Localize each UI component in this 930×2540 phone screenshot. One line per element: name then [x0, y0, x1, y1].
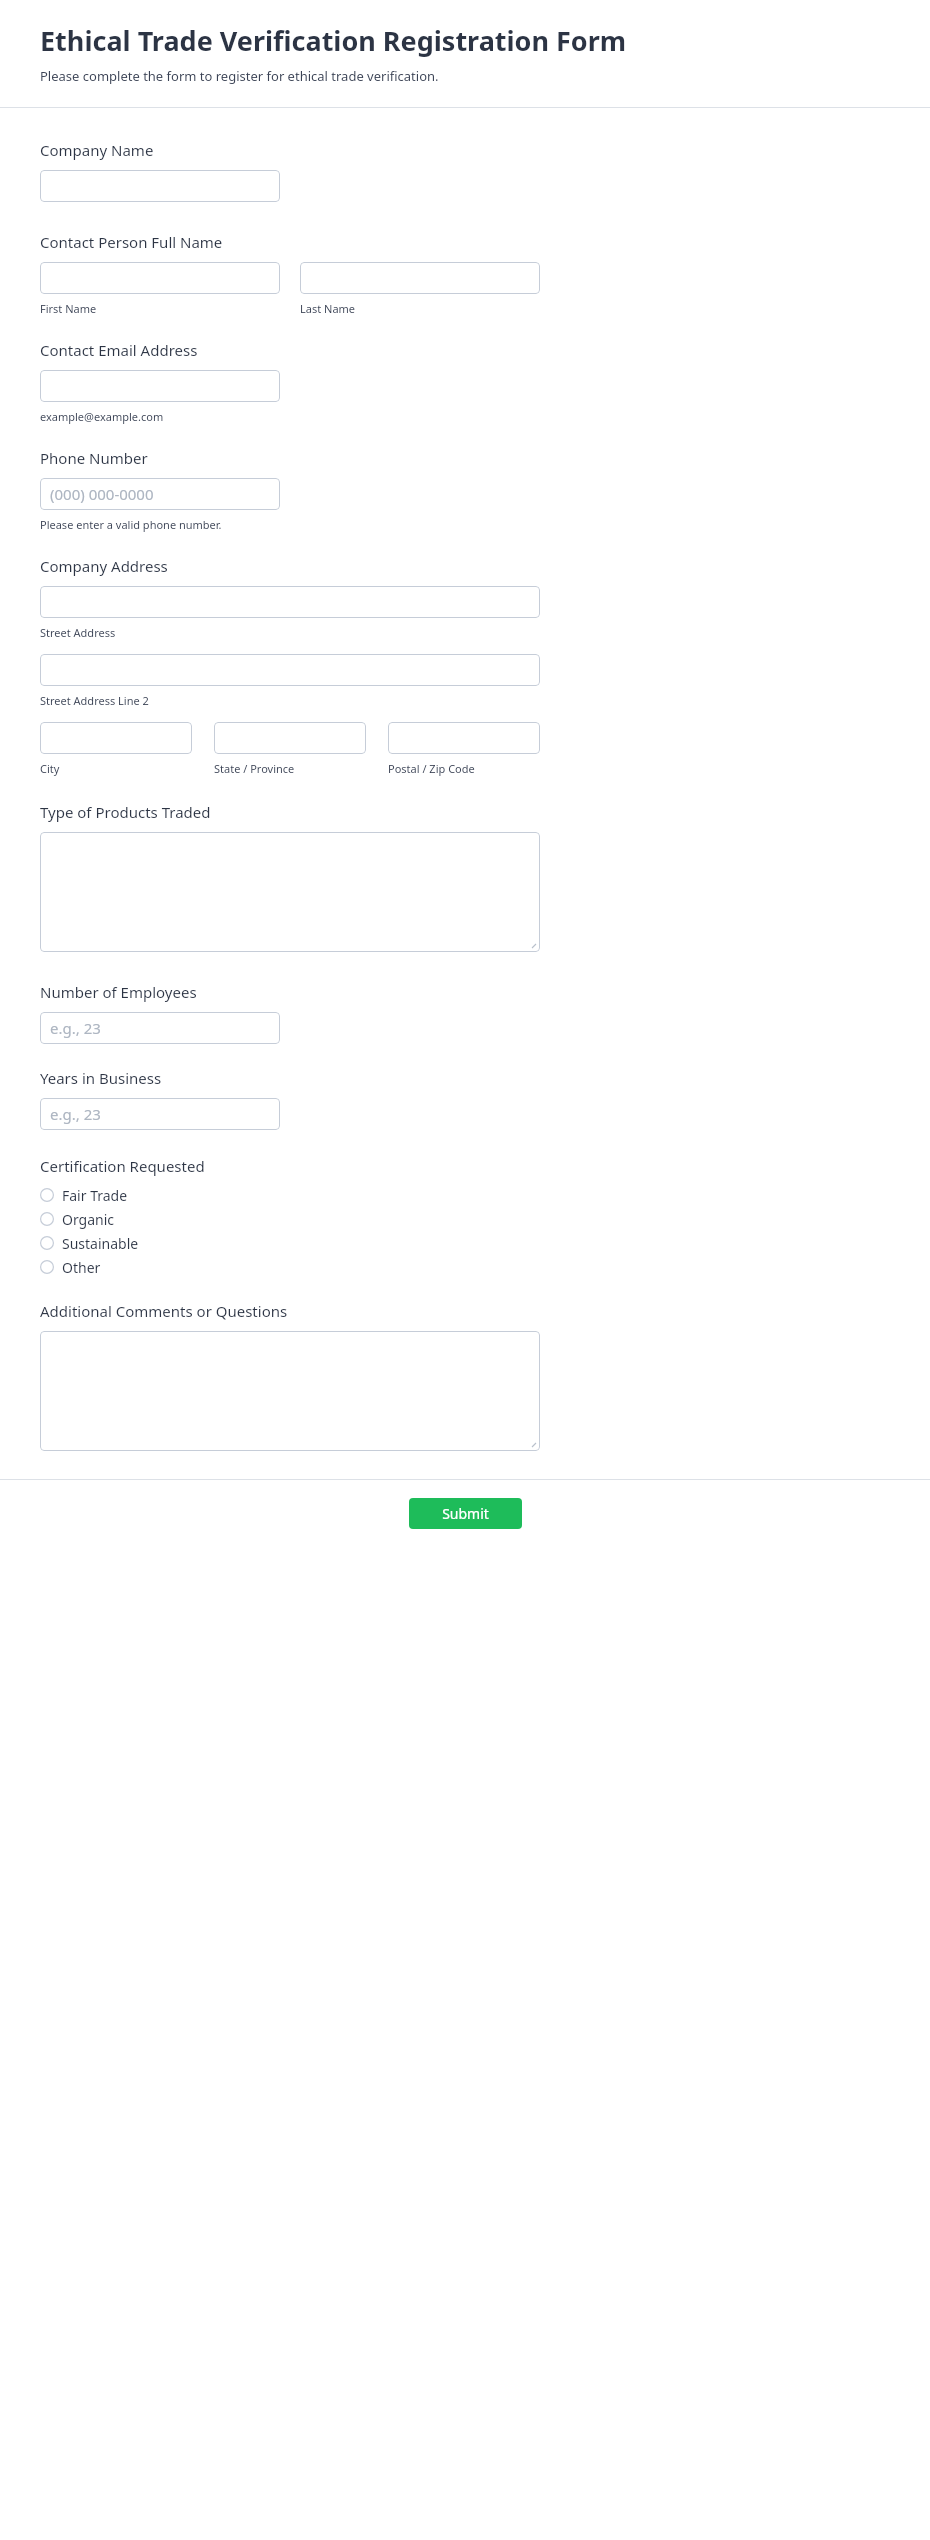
- staticText: State / Province: [214, 761, 295, 776]
- button[interactable]: e.g., 23: [40, 1012, 280, 1044]
- button[interactable]: [40, 586, 540, 618]
- button[interactable]: [40, 262, 280, 294]
- staticText: Sustainable: [62, 1234, 139, 1253]
- button[interactable]: [40, 1331, 540, 1451]
- button[interactable]: Other: [40, 1255, 101, 1279]
- button[interactable]: Fair Trade: [40, 1183, 128, 1207]
- staticText: Number of Employees: [40, 982, 197, 1002]
- staticText: Years in Business: [40, 1068, 162, 1088]
- staticText: Postal / Zip Code: [388, 761, 475, 776]
- button[interactable]: Sustainable: [40, 1231, 139, 1255]
- staticText: Please enter a valid phone number.: [40, 517, 222, 532]
- staticText: (000) 000-0000: [50, 484, 154, 504]
- button[interactable]: [40, 722, 192, 754]
- button[interactable]: Submit: [409, 1498, 522, 1529]
- button[interactable]: [40, 170, 280, 202]
- staticText: Fair Trade: [62, 1186, 128, 1205]
- staticText: example@example.com: [40, 409, 164, 424]
- button[interactable]: [214, 722, 366, 754]
- staticText: Additional Comments or Questions: [40, 1301, 288, 1321]
- staticText: First Name: [40, 301, 97, 316]
- staticText: Company Address: [40, 556, 168, 576]
- button[interactable]: [40, 370, 280, 402]
- staticText: Type of Products Traded: [40, 802, 211, 822]
- staticText: Street Address Line 2: [40, 693, 149, 708]
- staticText: Certification Requested: [40, 1156, 205, 1176]
- staticText: Street Address: [40, 625, 116, 640]
- button[interactable]: [300, 262, 540, 294]
- button[interactable]: Organic: [40, 1207, 115, 1231]
- staticText: e.g., 23: [50, 1104, 101, 1124]
- button[interactable]: [40, 832, 540, 952]
- staticText: Phone Number: [40, 448, 148, 468]
- staticText: Contact Email Address: [40, 340, 198, 360]
- staticText: Company Name: [40, 140, 154, 160]
- button[interactable]: e.g., 23: [40, 1098, 280, 1130]
- staticText: Ethical Trade Verification Registration …: [40, 22, 627, 59]
- staticText: Other: [62, 1258, 101, 1277]
- staticText: e.g., 23: [50, 1018, 101, 1038]
- button[interactable]: [388, 722, 540, 754]
- button[interactable]: (000) 000-0000: [40, 478, 280, 510]
- button[interactable]: [40, 654, 540, 686]
- staticText: Please complete the form to register for…: [40, 67, 439, 85]
- staticText: City: [40, 761, 60, 776]
- staticText: Last Name: [300, 301, 356, 316]
- staticText: Organic: [62, 1210, 115, 1229]
- staticText: Submit: [442, 1504, 489, 1523]
- staticText: Contact Person Full Name: [40, 232, 223, 252]
